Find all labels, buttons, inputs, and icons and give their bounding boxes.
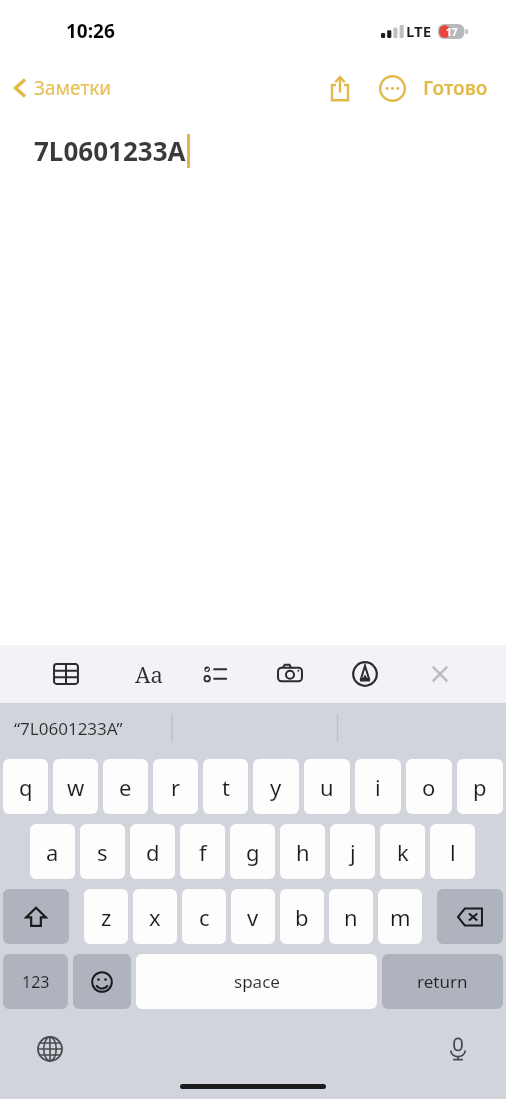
- button[interactable]: space: [136, 954, 377, 1009]
- staticText: j: [350, 837, 356, 867]
- staticText: return: [417, 970, 468, 993]
- staticText: k: [397, 837, 409, 867]
- button[interactable]: r: [153, 759, 198, 814]
- staticText: m: [390, 902, 411, 932]
- button[interactable]: m: [378, 889, 422, 944]
- staticText: i: [375, 772, 381, 802]
- button[interactable]: return: [382, 954, 503, 1009]
- button[interactable]: w: [53, 759, 98, 814]
- button[interactable]: c: [182, 889, 226, 944]
- button[interactable]: k: [380, 824, 425, 879]
- button[interactable]: p: [457, 759, 503, 814]
- staticText: e: [119, 772, 132, 802]
- staticText: a: [46, 837, 59, 867]
- button[interactable]: 123: [3, 954, 68, 1009]
- button[interactable]: v: [231, 889, 275, 944]
- button[interactable]: t: [203, 759, 248, 814]
- staticText: h: [296, 837, 310, 867]
- staticText: p: [473, 772, 487, 802]
- button[interactable]: More options: [371, 67, 413, 109]
- staticText: q: [19, 772, 33, 802]
- button[interactable]: Checklist: [196, 654, 236, 694]
- button[interactable]: o: [406, 759, 452, 814]
- staticText: l: [450, 837, 456, 867]
- staticText: z: [101, 902, 112, 932]
- button[interactable]: Table: [46, 654, 86, 694]
- button[interactable]: i: [355, 759, 401, 814]
- button[interactable]: Shift: [3, 889, 69, 944]
- staticText: x: [149, 902, 161, 932]
- button[interactable]: Camera: [270, 654, 310, 694]
- staticText: u: [320, 772, 334, 802]
- button[interactable]: Change keyboard language: [28, 1027, 72, 1071]
- button[interactable]: h: [280, 824, 325, 879]
- staticText: Заметки: [34, 75, 112, 101]
- staticText: o: [422, 772, 436, 802]
- button[interactable]: Close keyboard: [420, 654, 460, 694]
- button[interactable]: s: [80, 824, 125, 879]
- staticText: 10:26: [66, 18, 115, 44]
- button[interactable]: e: [103, 759, 148, 814]
- button[interactable]: l: [430, 824, 475, 879]
- button[interactable]: u: [304, 759, 350, 814]
- staticText: 123: [22, 971, 50, 993]
- button[interactable]: Backspace: [437, 889, 503, 944]
- staticText: n: [344, 902, 358, 932]
- staticText: Готово: [423, 75, 488, 101]
- button[interactable]: Markup: [345, 654, 385, 694]
- staticText: v: [247, 902, 259, 932]
- button[interactable]: d: [130, 824, 175, 879]
- staticText: c: [199, 902, 210, 932]
- staticText: b: [295, 902, 309, 932]
- button[interactable]: g: [230, 824, 275, 879]
- staticText: r: [171, 772, 181, 802]
- button[interactable]: y: [253, 759, 299, 814]
- button[interactable]: Заметки: [8, 71, 118, 105]
- button[interactable]: Format text: [121, 654, 161, 694]
- staticText: space: [234, 970, 280, 993]
- staticText: 7L0601233A: [34, 133, 186, 168]
- button[interactable]: z: [84, 889, 128, 944]
- button[interactable]: b: [280, 889, 324, 944]
- button[interactable]: x: [133, 889, 177, 944]
- staticText: w: [67, 772, 85, 802]
- button[interactable]: f: [180, 824, 225, 879]
- staticText: Aa: [135, 659, 163, 689]
- staticText: t: [222, 772, 230, 802]
- staticText: 17: [446, 25, 458, 39]
- staticText: “7L0601233A”: [14, 717, 123, 740]
- button[interactable]: Готово: [419, 69, 492, 107]
- button[interactable]: n: [329, 889, 373, 944]
- staticText: f: [199, 837, 207, 867]
- button[interactable]: Emoji: [73, 954, 131, 1009]
- staticText: g: [246, 837, 260, 867]
- button[interactable]: Share: [319, 67, 361, 109]
- staticText: d: [146, 837, 160, 867]
- button[interactable]: j: [330, 824, 375, 879]
- button[interactable]: Dictate: [436, 1027, 480, 1071]
- staticText: y: [270, 772, 282, 802]
- button[interactable]: q: [3, 759, 48, 814]
- staticText: LTE: [406, 21, 432, 41]
- button[interactable]: a: [30, 824, 75, 879]
- staticText: s: [97, 837, 108, 867]
